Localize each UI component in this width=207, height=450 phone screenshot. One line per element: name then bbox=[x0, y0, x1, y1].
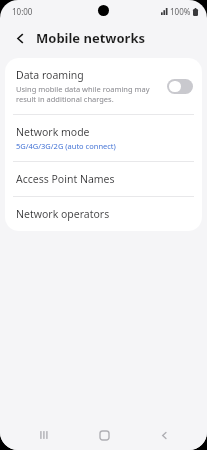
staticText: 5G/4G/3G/2G (auto connect) bbox=[16, 141, 116, 151]
staticText: Data roaming bbox=[16, 68, 84, 82]
button[interactable]: Home bbox=[87, 420, 121, 450]
button[interactable]: Back bbox=[147, 420, 181, 450]
staticText: Mobile networks bbox=[36, 29, 146, 47]
staticText: Access Point Names bbox=[16, 172, 115, 186]
button[interactable]: Recent apps bbox=[26, 420, 60, 450]
staticText: 10:00 bbox=[12, 6, 33, 17]
button[interactable]: Data roaming bbox=[5, 58, 202, 114]
button[interactable]: Back bbox=[10, 28, 30, 48]
button[interactable]: Network mode bbox=[5, 115, 202, 161]
staticText: Network mode bbox=[16, 125, 90, 139]
staticText: 100% bbox=[170, 6, 191, 17]
staticText: Network operators bbox=[16, 207, 110, 221]
button[interactable]: Access Point Names bbox=[5, 162, 202, 196]
button[interactable]: Network operators bbox=[5, 197, 202, 231]
staticText: Using mobile data while roaming may resu… bbox=[16, 84, 161, 104]
button[interactable]: Data roaming toggle bbox=[167, 79, 193, 94]
